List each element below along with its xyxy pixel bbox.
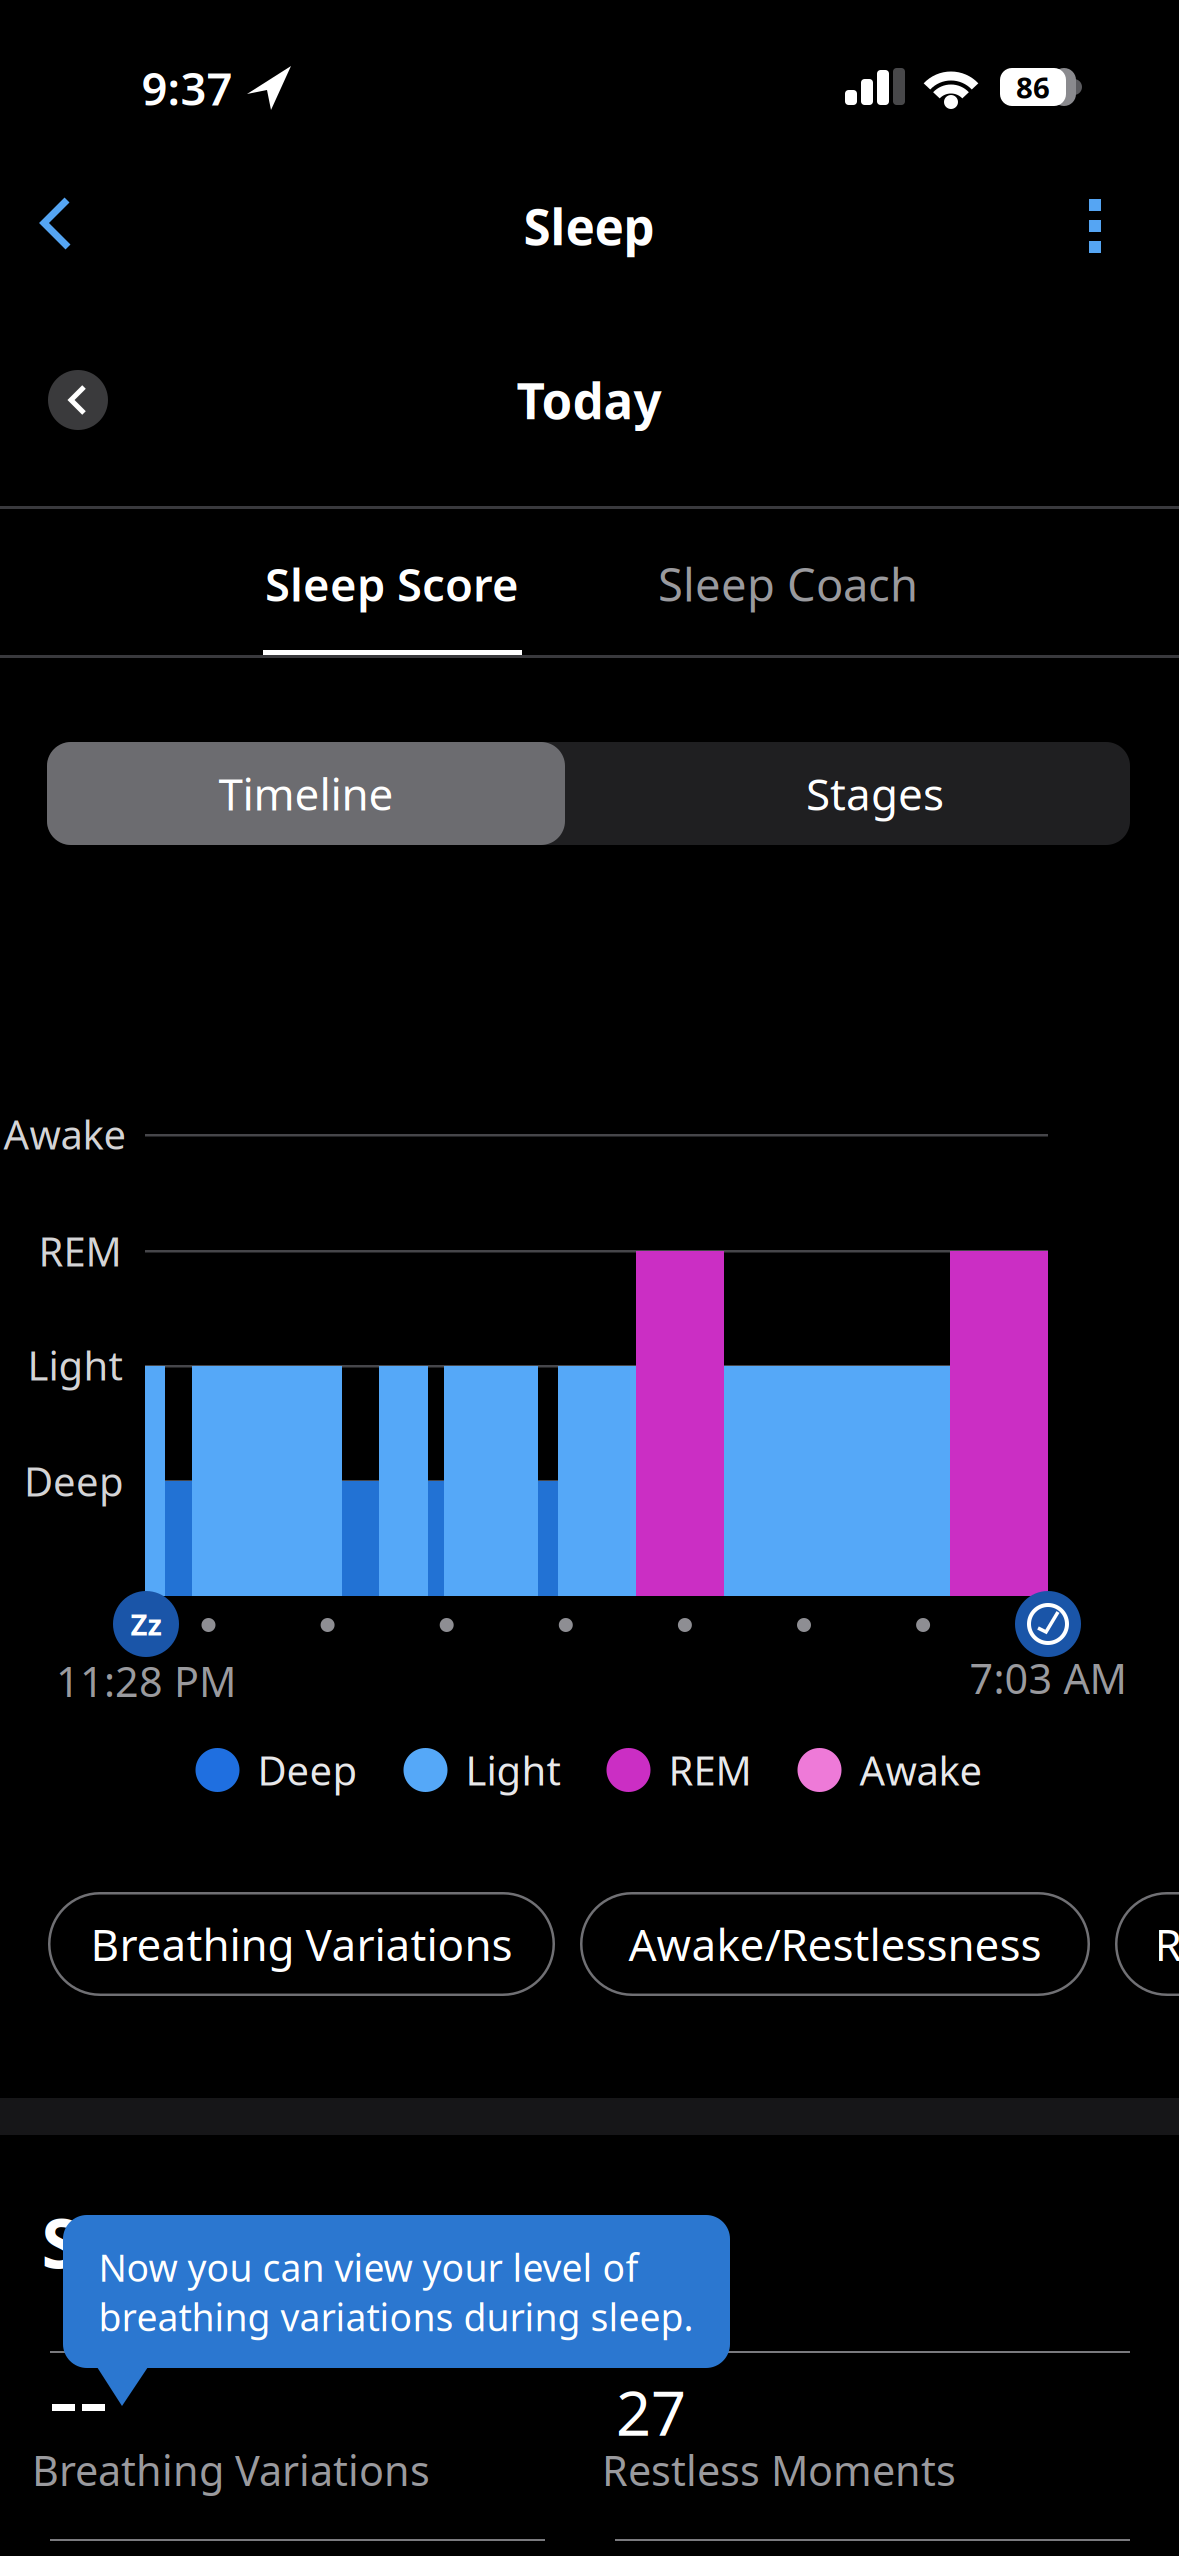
staticText: Light (27, 1338, 122, 1391)
staticText: Zz (130, 1604, 161, 1643)
staticText: Today (516, 367, 661, 433)
staticText: 86 (1016, 67, 1050, 106)
staticText: Timeline (218, 764, 393, 823)
staticText: 9:37 (141, 58, 232, 118)
staticText: Restless Moments (602, 2443, 956, 2497)
staticText: Sleep (523, 193, 654, 259)
staticText: Sleep Score (265, 554, 519, 614)
staticText: Awake (3, 1107, 126, 1160)
staticText: 7:03 AM (969, 1651, 1126, 1705)
staticText: Deep (257, 1743, 357, 1796)
staticText: Breathing Variations (90, 1915, 512, 1973)
staticText: Breathing Variations (32, 2443, 430, 2497)
staticText: R (1154, 1915, 1179, 1973)
button[interactable]: Back (11, 178, 101, 268)
staticText: 27 (616, 2371, 686, 2453)
staticText: REM (668, 1743, 751, 1796)
staticText: REM (38, 1224, 121, 1277)
button[interactable]: Previous day (48, 370, 108, 430)
button[interactable]: Restless Moments (1115, 1892, 1179, 1996)
button[interactable]: Stages (625, 742, 1125, 845)
button[interactable]: Awake/Restlessness (580, 1892, 1090, 1996)
staticText: S (41, 2197, 78, 2287)
staticText: Awake (859, 1743, 982, 1796)
staticText: Now you can view your level of (98, 2242, 638, 2292)
staticText: Stages (806, 764, 944, 823)
staticText: Awake/Restlessness (628, 1915, 1041, 1973)
staticText: Light (465, 1743, 560, 1796)
staticText: Deep (24, 1454, 124, 1507)
staticText: breathing variations during sleep. (98, 2292, 693, 2342)
staticText: Sleep Coach (658, 554, 918, 614)
button[interactable]: Sleep Score (222, 539, 562, 629)
staticText: 11:28 PM (56, 1654, 236, 1708)
button[interactable]: More options (1065, 186, 1125, 266)
button[interactable]: Timeline (47, 742, 565, 845)
button[interactable]: Sleep Coach (618, 539, 958, 629)
button[interactable]: Breathing Variations (48, 1892, 555, 1996)
